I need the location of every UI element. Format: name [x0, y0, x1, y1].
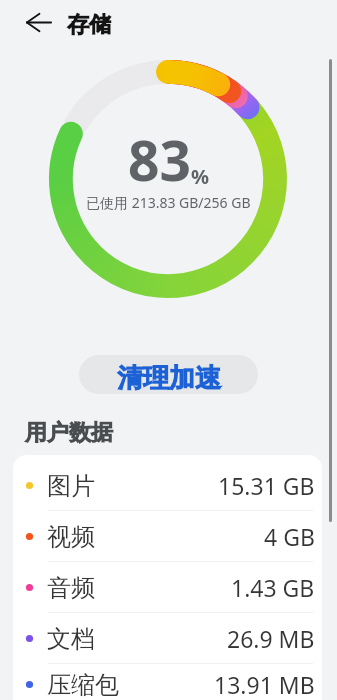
- staticText: 音频: [47, 573, 95, 603]
- button[interactable]: 清理加速: [79, 355, 258, 394]
- staticText: 13.91 MB: [214, 669, 315, 700]
- staticText: 15.31 GB: [218, 470, 315, 501]
- staticText: 压缩包: [47, 670, 119, 700]
- staticText: 4 GB: [264, 521, 315, 552]
- button[interactable]: Back: [17, 0, 61, 45]
- button[interactable]: 文档: [13, 613, 322, 664]
- staticText: 清理加速: [117, 362, 221, 394]
- button[interactable]: 音频: [13, 562, 322, 613]
- button[interactable]: 视频: [13, 511, 322, 562]
- button[interactable]: 压缩包: [13, 664, 322, 700]
- staticText: 已使用 213.83 GB/256 GB: [86, 193, 251, 212]
- button[interactable]: 图片: [13, 460, 322, 511]
- staticText: 用户数据: [25, 419, 113, 447]
- staticText: 文档: [47, 624, 95, 654]
- staticText: %: [191, 163, 210, 190]
- staticText: 存储: [67, 11, 111, 39]
- staticText: 图片: [47, 471, 95, 501]
- staticText: 26.9 MB: [227, 623, 315, 654]
- staticText: 1.43 GB: [231, 572, 315, 603]
- staticText: 视频: [47, 522, 95, 552]
- staticText: 83: [128, 122, 191, 197]
